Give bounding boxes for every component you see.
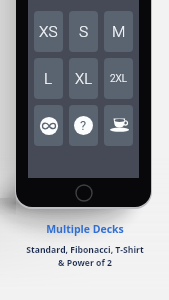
button[interactable]: L [34,58,63,99]
button[interactable]: XS [34,11,63,52]
staticText: XL [75,70,93,88]
button[interactable]: Home [75,184,93,202]
button[interactable]: 2XL [104,58,133,99]
button[interactable]: Coffee break card [104,105,133,146]
button[interactable]: XL [69,58,98,99]
button[interactable]: Unknown card [69,105,98,146]
staticText: L [44,70,53,88]
staticText: Standard, Fibonacci, T-Shirt & Power of … [26,244,144,268]
staticText: XS [39,23,58,41]
staticText: ? [80,118,87,133]
staticText: Multiple Decks [46,222,124,236]
button[interactable]: M [104,11,133,52]
button[interactable]: Infinite deck [34,105,63,146]
staticText: M [112,23,126,41]
button[interactable]: S [69,11,98,52]
staticText: S [79,23,89,41]
staticText: 2XL [110,73,127,85]
